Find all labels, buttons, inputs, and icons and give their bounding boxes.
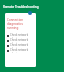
staticText: Check network adapter — [10, 38, 34, 43]
button[interactable]: Help — [28, 11, 32, 15]
staticText: Remote Troubleshooting — [3, 5, 39, 9]
staticText: Connection diagnostics running — [7, 18, 34, 30]
staticText: Check network adapter — [10, 33, 34, 38]
staticText: Check network adapter — [10, 48, 34, 53]
staticText: Check network adapter — [10, 43, 34, 48]
